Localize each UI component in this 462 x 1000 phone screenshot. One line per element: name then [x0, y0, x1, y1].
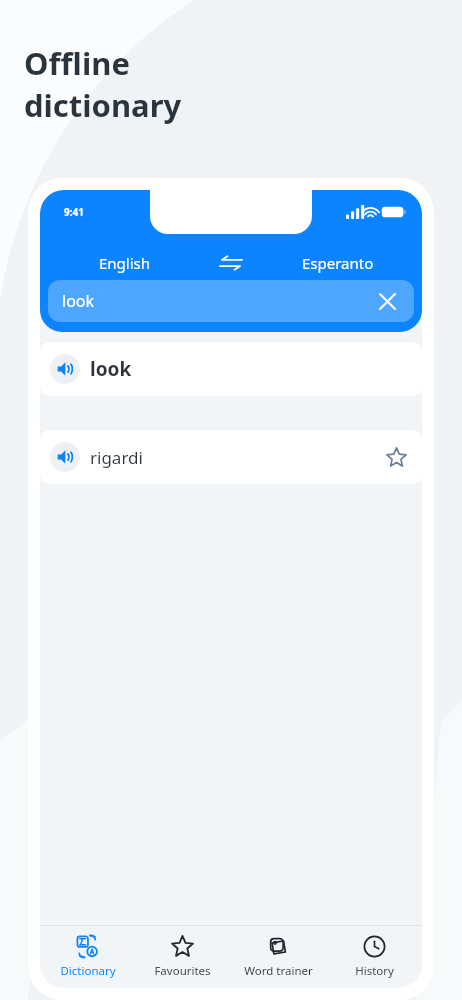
button[interactable]: History [326, 926, 422, 988]
staticText: Esperanto [302, 253, 374, 273]
staticText: Dictionary [60, 963, 116, 979]
staticText: Favourites [154, 963, 211, 979]
button[interactable]: Pronounce look [40, 342, 422, 396]
button[interactable]: look [48, 280, 414, 322]
staticText: look [62, 290, 95, 312]
button[interactable]: Swap languages [209, 246, 253, 280]
button[interactable]: Pronounce rigardi [50, 442, 80, 472]
button[interactable]: Add to favourites [380, 441, 412, 473]
button[interactable]: Pronounce rigardi [40, 430, 422, 484]
button[interactable]: Favourites [135, 926, 230, 988]
staticText: Offline [24, 42, 130, 84]
button[interactable]: Esperanto [253, 246, 422, 280]
staticText: dictionary [24, 84, 182, 126]
button[interactable]: Pronounce look [50, 354, 80, 384]
button[interactable]: Word trainer [230, 926, 326, 988]
staticText: English [99, 253, 151, 273]
button[interactable]: Dictionary [40, 926, 135, 988]
staticText: rigardi [90, 446, 143, 469]
staticText: History [355, 963, 394, 979]
staticText: Word trainer [244, 963, 313, 979]
button[interactable]: Clear [374, 288, 400, 314]
staticText: look [90, 356, 132, 382]
button[interactable]: English [40, 246, 209, 280]
staticText: 9:41 [64, 205, 84, 219]
